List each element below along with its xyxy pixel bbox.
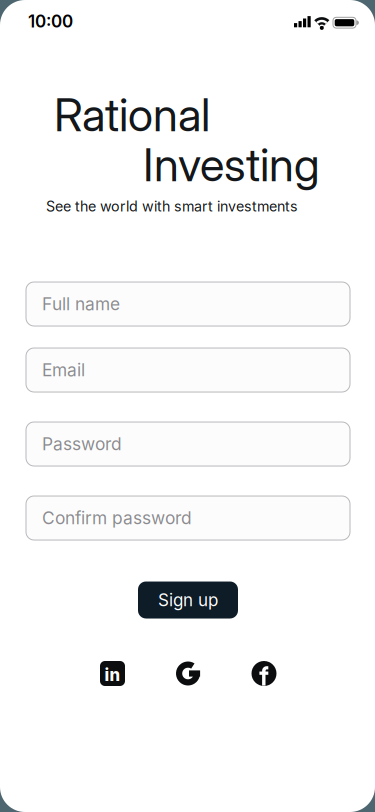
button[interactable]: Confirm password xyxy=(26,496,350,540)
button[interactable]: Full name xyxy=(26,282,350,326)
staticText: Sign up xyxy=(158,590,218,610)
staticText: Confirm password xyxy=(42,507,192,528)
button[interactable]: Email xyxy=(26,348,350,392)
button[interactable]: Password xyxy=(26,422,350,466)
staticText: in xyxy=(104,665,120,685)
staticText: Email xyxy=(42,359,85,380)
staticText: Investing xyxy=(143,137,320,192)
staticText: Rational xyxy=(54,87,210,142)
staticText: See the world with smart investments xyxy=(46,198,298,215)
button[interactable]: Sign up with Google xyxy=(175,661,200,686)
staticText: Password xyxy=(42,433,122,454)
staticText: 10:00 xyxy=(28,11,73,32)
button[interactable]: Sign up with Facebook xyxy=(251,661,276,686)
button[interactable]: Sign up xyxy=(138,581,238,618)
button[interactable]: Sign up with LinkedIn xyxy=(100,661,125,686)
staticText: Full name xyxy=(42,293,120,314)
